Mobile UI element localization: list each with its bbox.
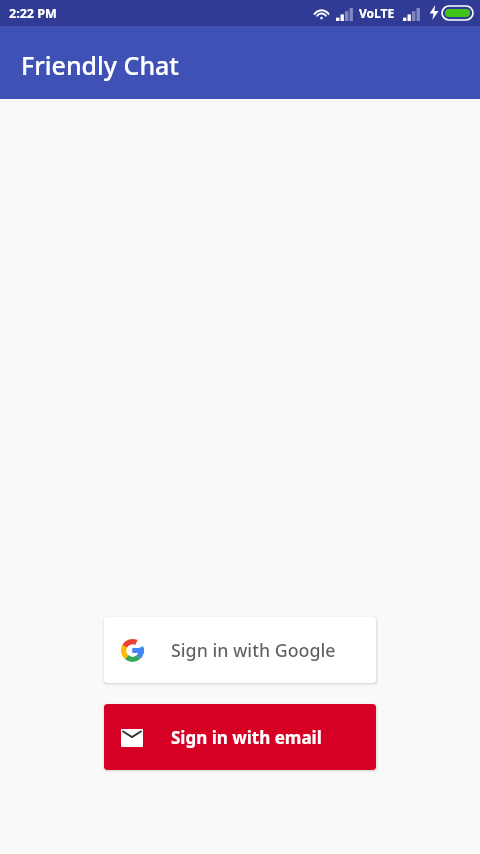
button[interactable]: Sign in with Google bbox=[104, 617, 376, 683]
other: Charging bbox=[429, 5, 439, 20]
other: Mobile signal SIM 1 bbox=[336, 8, 353, 21]
other: Battery full bbox=[442, 6, 473, 20]
other: Mobile signal SIM 2 bbox=[403, 8, 420, 21]
staticText: Friendly Chat bbox=[21, 48, 179, 82]
staticText: VoLTE bbox=[359, 5, 395, 21]
button[interactable]: Sign in with email bbox=[104, 704, 376, 770]
staticText: Sign in with Google bbox=[171, 638, 336, 662]
other: Wi-Fi signal bbox=[313, 5, 330, 20]
staticText: 2:22 PM bbox=[9, 5, 57, 22]
staticText: Sign in with email bbox=[171, 726, 322, 749]
